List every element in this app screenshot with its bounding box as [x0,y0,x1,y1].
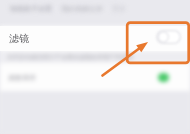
staticText: 原图保存 [8,73,36,82]
button[interactable]: 我的相册记录 [61,4,103,13]
button[interactable]: 滤镜 [0,26,190,51]
button[interactable]: Toggle filter [156,30,181,44]
staticText: 关闭后拍摄的照片不会叠加滤镜效果哦不再提醒 [7,53,133,61]
staticText: 滤镜 [9,32,29,45]
button[interactable]: 智能助手设置 [10,4,52,13]
button[interactable]: Toggle original photo [158,73,169,82]
